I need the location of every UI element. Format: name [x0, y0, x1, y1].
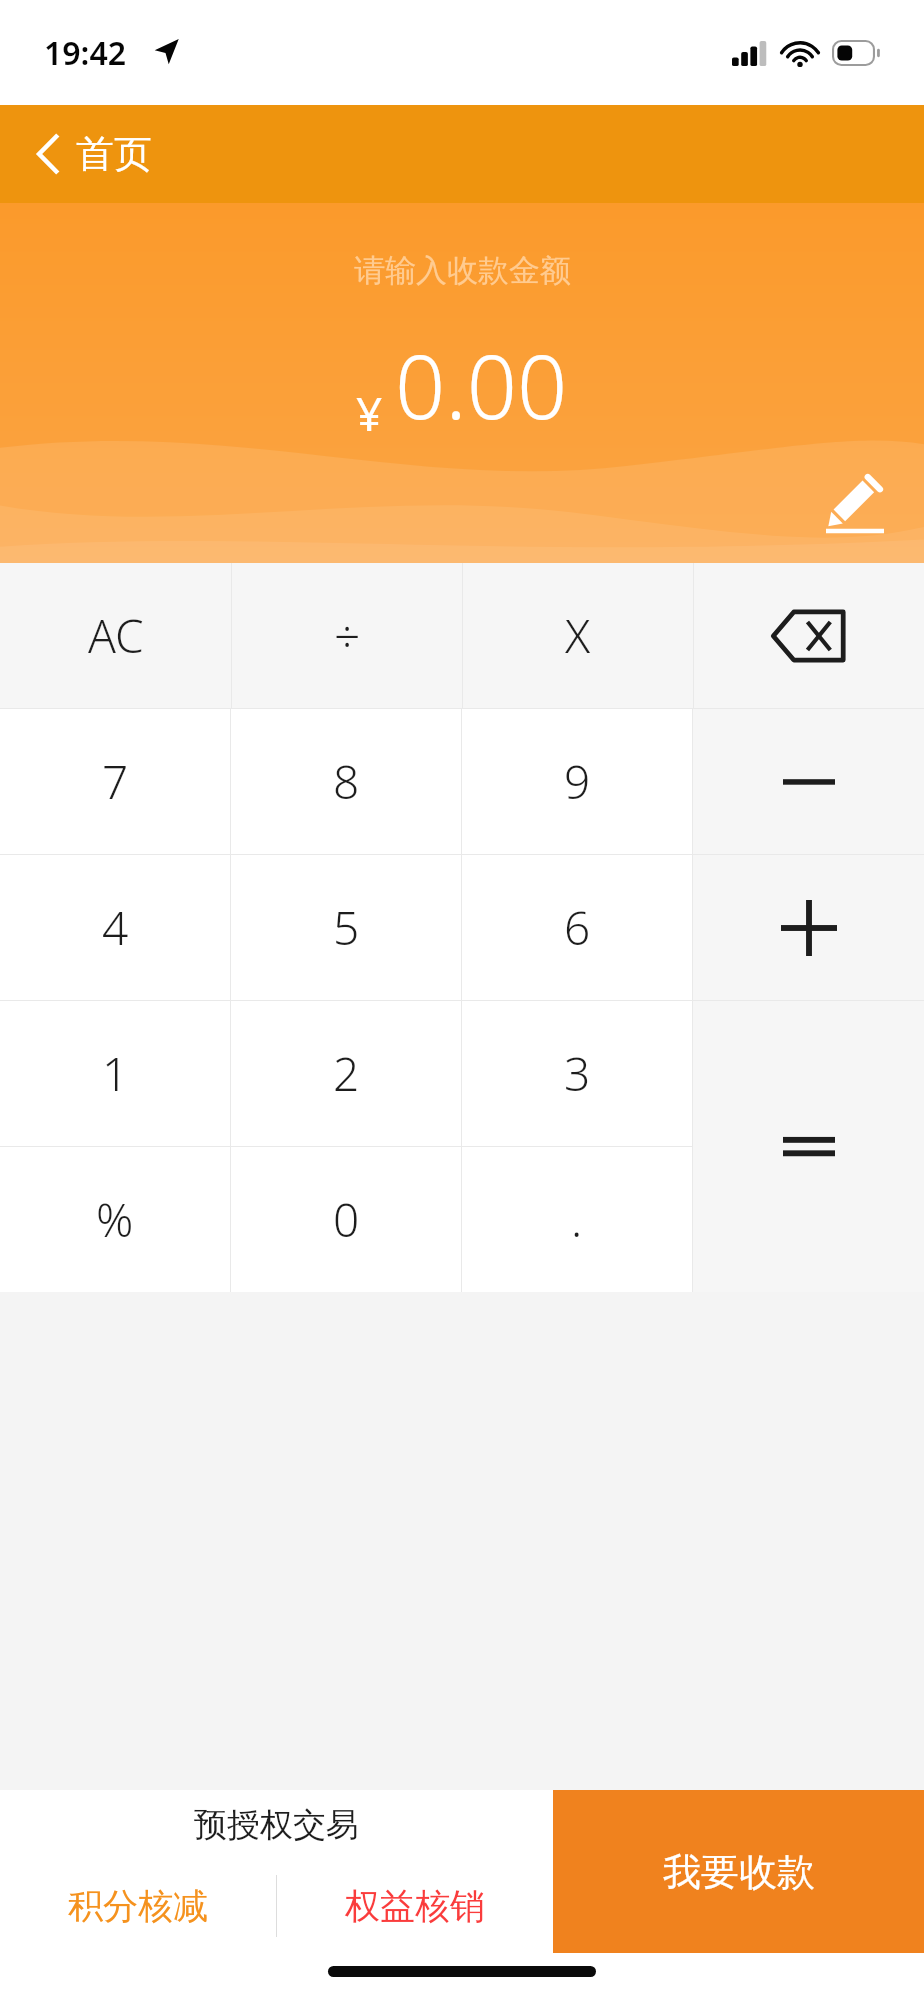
button[interactable]: 4 [0, 855, 230, 1000]
staticText: 2 [333, 1042, 360, 1105]
staticText: 首页 [76, 130, 152, 178]
button[interactable]: . [462, 1147, 692, 1292]
button[interactable]: X [463, 563, 693, 708]
staticText: 3 [564, 1042, 591, 1105]
staticText: 9 [564, 750, 591, 813]
button[interactable]: 备注 [820, 467, 890, 537]
staticText: AC [88, 604, 144, 667]
staticText: 8 [333, 750, 360, 813]
staticText: 0.00 [395, 325, 568, 445]
other: 退格 [771, 609, 847, 663]
staticText: 4 [102, 896, 129, 959]
staticText: 0 [333, 1188, 360, 1251]
staticText: 6 [564, 896, 591, 959]
staticText: ¥ [356, 382, 383, 445]
staticText: % [96, 1188, 134, 1251]
staticText: 5 [333, 896, 360, 959]
other: 等于 [783, 1133, 835, 1161]
staticText: 1 [102, 1042, 129, 1105]
other: 减 [783, 777, 835, 787]
button[interactable]: 3 [462, 1001, 692, 1146]
button[interactable]: 9 [462, 709, 692, 854]
button[interactable]: 等于 [693, 1001, 924, 1292]
staticText: 预授权交易 [194, 1804, 359, 1846]
button[interactable]: % [0, 1147, 230, 1292]
button[interactable]: 积分核减 [0, 1858, 276, 1953]
staticText: 19:42 [44, 31, 127, 75]
staticText: 我要收款 [663, 1848, 815, 1896]
button[interactable]: AC [0, 563, 231, 708]
button[interactable]: 7 [0, 709, 230, 854]
staticText: 权益核销 [345, 1884, 485, 1928]
button[interactable]: 首页 [0, 105, 182, 203]
button[interactable]: 退格 [694, 563, 924, 708]
staticText: ÷ [334, 604, 361, 667]
staticText: . [571, 1188, 583, 1251]
other: 加 [781, 900, 837, 956]
staticText: 7 [102, 750, 129, 813]
button[interactable]: 权益核销 [277, 1858, 553, 1953]
button[interactable]: 2 [231, 1001, 461, 1146]
button[interactable]: 我要收款 [553, 1790, 924, 1953]
button[interactable]: 加 [693, 855, 924, 1000]
staticText: 请输入收款金额 [354, 251, 571, 290]
button[interactable]: 0 [231, 1147, 461, 1292]
button[interactable]: ÷ [232, 563, 462, 708]
button[interactable]: 5 [231, 855, 461, 1000]
button[interactable]: 6 [462, 855, 692, 1000]
staticText: X [565, 604, 591, 667]
button[interactable]: 8 [231, 709, 461, 854]
button[interactable]: 减 [693, 709, 924, 854]
staticText: 积分核减 [68, 1884, 208, 1928]
button[interactable]: 1 [0, 1001, 230, 1146]
